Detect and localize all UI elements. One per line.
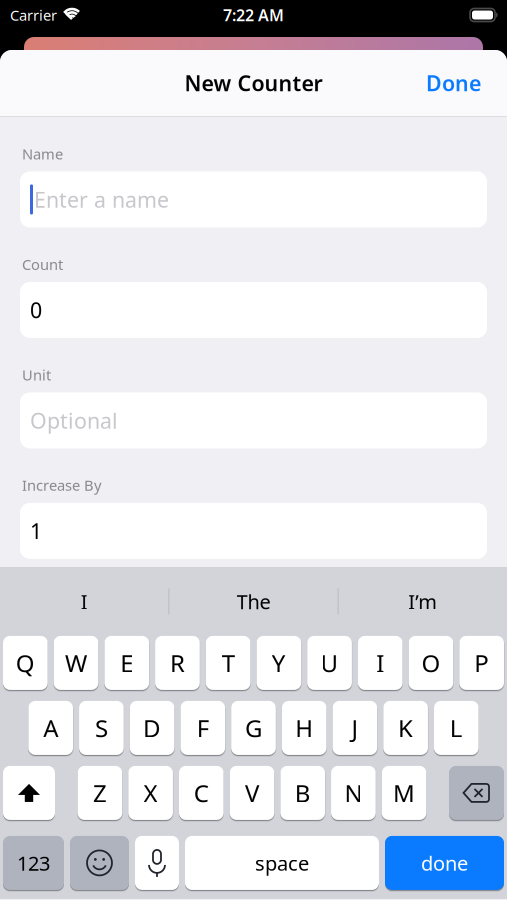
button[interactable]: W [54, 636, 98, 690]
button[interactable]: I [0, 588, 168, 615]
staticText: I [81, 588, 88, 615]
staticText: S [95, 712, 108, 744]
staticText: U [321, 647, 339, 679]
staticText: M [393, 777, 415, 809]
staticText: done [421, 850, 468, 876]
staticText: A [43, 712, 58, 744]
staticText: O [421, 647, 440, 679]
staticText: G [245, 712, 262, 744]
staticText: Done [426, 69, 481, 97]
button[interactable]: R [155, 636, 200, 690]
staticText: E [120, 647, 133, 679]
button[interactable]: done [385, 836, 504, 890]
staticText: Unit [22, 365, 51, 384]
staticText: Name [22, 144, 63, 163]
staticText: K [398, 712, 413, 744]
staticText: 1 [30, 517, 42, 545]
button[interactable]: G [231, 701, 276, 755]
button[interactable]: 1 [20, 503, 487, 559]
button[interactable]: H [282, 701, 327, 755]
staticText: C [194, 777, 209, 809]
button[interactable]: Shift [3, 766, 55, 820]
staticText: H [295, 712, 313, 744]
staticText: R [170, 647, 185, 679]
button[interactable]: F [180, 701, 225, 755]
staticText: The [236, 588, 270, 615]
staticText: P [474, 647, 489, 679]
button[interactable]: Y [256, 636, 301, 690]
button[interactable]: Emoji [70, 836, 129, 890]
staticText: New Counter [184, 69, 322, 97]
button[interactable]: M [382, 766, 426, 820]
button[interactable]: Dictate [135, 836, 179, 890]
button[interactable]: I’m [339, 588, 507, 615]
staticText: Q [16, 647, 35, 679]
button[interactable]: J [333, 701, 377, 755]
button[interactable]: X [128, 766, 173, 820]
staticText: Increase By [22, 475, 101, 495]
staticText: L [450, 712, 463, 744]
staticText: X [144, 777, 158, 809]
staticText: I [376, 647, 384, 679]
staticText: Y [272, 647, 286, 679]
staticText: 0 [30, 296, 42, 324]
staticText: F [197, 712, 209, 744]
button[interactable]: L [434, 701, 479, 755]
button[interactable]: B [280, 766, 325, 820]
staticText: Count [22, 254, 63, 274]
staticText: 123 [17, 850, 50, 876]
staticText: space [255, 850, 309, 876]
button[interactable]: U [307, 636, 352, 690]
staticText: Carrier [10, 5, 57, 25]
staticText: I’m [408, 588, 437, 615]
button[interactable]: P [459, 636, 504, 690]
staticText: V [245, 777, 259, 809]
button[interactable]: Z [78, 766, 122, 820]
button[interactable]: T [206, 636, 250, 690]
button[interactable]: V [230, 766, 274, 820]
button[interactable]: N [331, 766, 376, 820]
button[interactable]: The [169, 588, 338, 615]
button[interactable]: E [104, 636, 149, 690]
staticText: Enter a name [34, 185, 169, 214]
staticText: 7:22 AM [223, 4, 284, 26]
button[interactable]: I [358, 636, 403, 690]
staticText: N [344, 777, 362, 809]
button[interactable]: Enter a name [20, 171, 487, 227]
button[interactable]: 123 [3, 836, 64, 890]
staticText: J [351, 712, 358, 744]
button[interactable]: C [179, 766, 224, 820]
button[interactable]: 0 [20, 282, 487, 338]
button[interactable]: Delete [449, 766, 504, 820]
button[interactable]: O [409, 636, 453, 690]
button[interactable]: S [79, 701, 124, 755]
button[interactable]: K [383, 701, 428, 755]
staticText: Z [93, 777, 107, 809]
staticText: D [143, 712, 161, 744]
staticText: T [222, 647, 235, 679]
staticText: W [65, 647, 87, 679]
button[interactable]: space [185, 836, 379, 890]
staticText: Optional [30, 406, 118, 435]
staticText: B [295, 777, 311, 809]
button[interactable]: Done [426, 69, 481, 97]
button[interactable]: D [130, 701, 174, 755]
button[interactable]: Optional [20, 392, 487, 448]
button[interactable]: A [28, 701, 73, 755]
button[interactable]: Q [3, 636, 48, 690]
